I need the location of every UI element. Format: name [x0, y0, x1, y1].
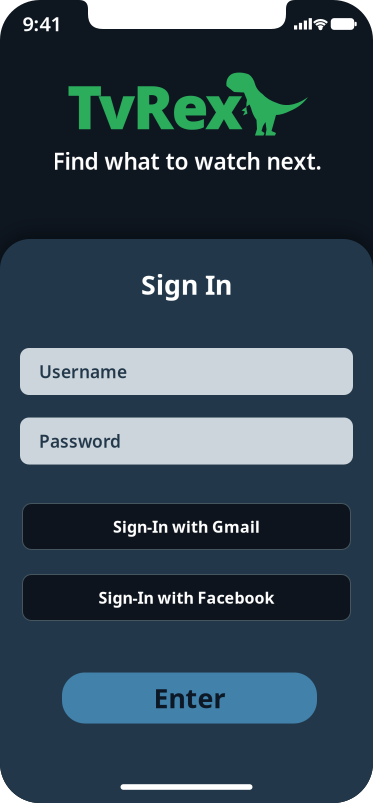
staticText: Password	[39, 429, 121, 452]
button[interactable]: Enter	[62, 672, 317, 723]
staticText: Enter	[153, 680, 225, 716]
button[interactable]: Sign-In with Facebook	[22, 574, 350, 620]
button[interactable]: Sign-In with Gmail	[22, 503, 350, 549]
staticText: Sign-In with Gmail	[113, 516, 260, 537]
staticText: Sign In	[141, 267, 232, 302]
staticText: TvRex	[67, 66, 243, 146]
staticText: Username	[39, 360, 127, 383]
staticText: 9:41	[22, 10, 61, 37]
button[interactable]: Username	[20, 348, 353, 395]
staticText: Find what to watch next.	[52, 146, 321, 176]
staticText: Sign-In with Facebook	[98, 587, 274, 608]
button[interactable]: Password	[20, 417, 353, 464]
